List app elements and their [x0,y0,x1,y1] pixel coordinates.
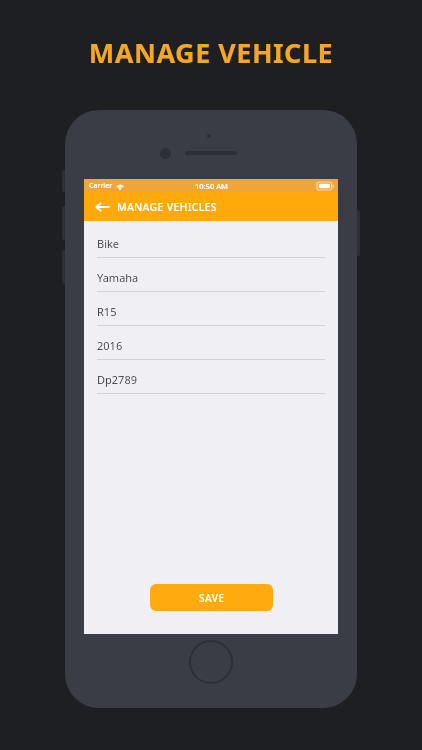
button[interactable]: SAVE [150,584,273,611]
button[interactable]: Back [91,196,113,218]
button[interactable]: Bike [97,229,325,263]
staticText: Bike [97,236,120,251]
staticText: Dp2789 [97,372,137,387]
button[interactable]: Yamaha [97,263,325,297]
staticText: 10:50 AM [195,181,228,191]
button[interactable]: 2016 [97,331,325,365]
staticText: 2016 [97,338,123,353]
staticText: Carrier [89,181,113,191]
button[interactable]: Dp2789 [97,365,325,399]
staticText: MANAGE VEHICLES [117,200,217,214]
staticText: R15 [97,304,117,319]
staticText: SAVE [199,591,225,605]
staticText: MANAGE VEHICLE [0,34,422,71]
staticText: Yamaha [97,270,139,285]
button[interactable]: R15 [97,297,325,331]
